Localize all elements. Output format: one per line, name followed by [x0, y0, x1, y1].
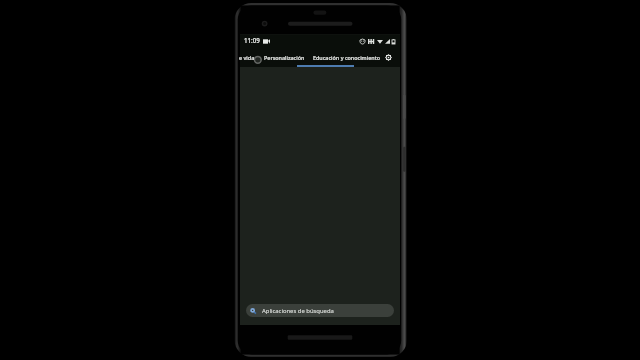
- staticText: e vida: [239, 54, 255, 61]
- button[interactable]: Personalización: [264, 54, 305, 61]
- button[interactable]: Settings: [382, 51, 395, 64]
- staticText: 11:09: [244, 36, 260, 44]
- button[interactable]: e vida: [239, 54, 255, 61]
- staticText: Aplicaciones de búsqueda: [262, 307, 334, 315]
- staticText: Educación y conocimiento: [313, 54, 380, 61]
- button[interactable]: Educación y conocimiento: [313, 54, 380, 61]
- staticText: Personalización: [264, 54, 305, 61]
- button[interactable]: Aplicaciones de búsqueda: [246, 304, 394, 317]
